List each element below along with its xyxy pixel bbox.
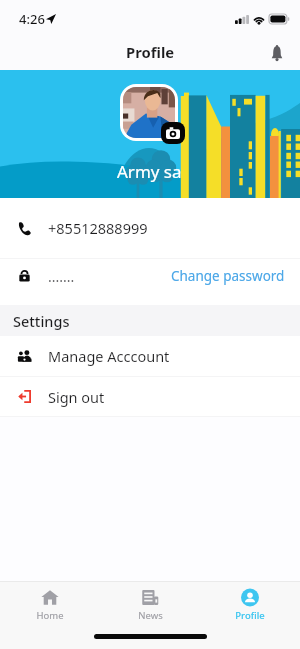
staticText: ....... <box>48 267 75 286</box>
staticText: Profile <box>126 42 175 62</box>
button[interactable]: Profile <box>200 582 300 630</box>
button[interactable]: Sign out <box>0 377 300 416</box>
staticText: News <box>138 609 163 622</box>
button[interactable]: +85512888999 <box>0 198 300 258</box>
staticText: Army sa <box>117 160 182 183</box>
staticText: Sign out <box>48 387 105 407</box>
button[interactable]: Manage Acccount <box>0 336 300 376</box>
button[interactable]: Home <box>0 582 100 630</box>
staticText: Settings <box>13 311 70 331</box>
button[interactable]: ....... <box>0 259 300 293</box>
button[interactable]: Change photo <box>161 122 185 144</box>
staticText: Change password <box>171 267 285 285</box>
button[interactable]: News <box>100 582 200 630</box>
button[interactable]: Profile photo <box>123 87 175 138</box>
staticText: Home <box>36 609 64 622</box>
staticText: Manage Acccount <box>48 346 170 366</box>
staticText: Profile <box>235 609 265 622</box>
staticText: 4:26 <box>19 10 45 28</box>
staticText: +85512888999 <box>48 218 148 238</box>
button[interactable]: Notifications <box>260 36 294 70</box>
